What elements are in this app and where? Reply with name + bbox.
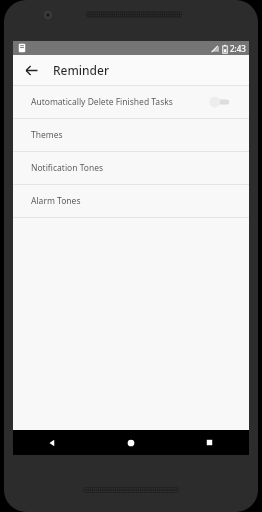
- button[interactable]: Home: [91, 430, 170, 455]
- button[interactable]: Back: [13, 430, 91, 455]
- staticText: Reminder: [53, 62, 110, 78]
- button[interactable]: Recent apps: [170, 430, 249, 455]
- staticText: Themes: [31, 129, 231, 141]
- button[interactable]: Notification Tones: [13, 152, 249, 184]
- staticText: Notification Tones: [31, 162, 231, 174]
- staticText: Alarm Tones: [31, 195, 231, 207]
- button[interactable]: Back: [19, 58, 43, 82]
- staticText: 2:43: [230, 43, 246, 54]
- staticText: Automatically Delete Finished Tasks: [31, 96, 209, 108]
- button[interactable]: Automatically Delete Finished Tasks: [13, 86, 249, 118]
- button[interactable]: Alarm Tones: [13, 185, 249, 217]
- button[interactable]: Themes: [13, 119, 249, 151]
- button[interactable]: Automatically Delete Finished Tasks togg…: [209, 94, 231, 110]
